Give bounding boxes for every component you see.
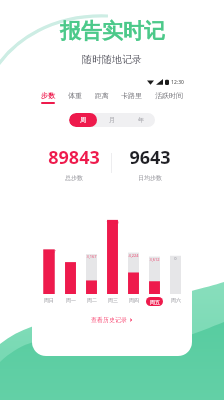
staticText: 周三 (108, 297, 118, 303)
staticText: 89843 (48, 145, 100, 170)
staticText: 随时随地记录 (82, 53, 142, 66)
staticText: 周日 (44, 297, 54, 303)
button[interactable]: 月 (97, 113, 126, 127)
staticText: 周一 (66, 297, 76, 303)
button[interactable]: 19,849 (102, 198, 123, 294)
staticText: 9,087 (65, 262, 76, 267)
button[interactable]: 9643 (112, 143, 187, 184)
staticText: 9643 (129, 145, 171, 170)
staticText: 报告实时记 (60, 18, 165, 44)
button[interactable]: 卡路里 (119, 90, 144, 103)
staticText: 距离 (95, 91, 109, 100)
staticText: 周六 (171, 297, 181, 303)
staticText: 12:30 (171, 79, 184, 86)
button[interactable]: 周 (69, 113, 97, 127)
staticText: 4,224 (128, 253, 139, 258)
staticText: 总步数 (65, 174, 83, 182)
button[interactable]: 年 (126, 113, 155, 127)
button[interactable]: 3,612 (144, 198, 165, 294)
button[interactable]: 0 (165, 198, 186, 294)
staticText: 0 (174, 256, 177, 261)
staticText: 日均步数 (138, 174, 162, 182)
staticText: 周四 (129, 297, 139, 303)
staticText: 3,167 (86, 254, 97, 259)
staticText: 3,612 (149, 257, 160, 262)
staticText: 周二 (87, 297, 97, 303)
staticText: 12,167 (43, 249, 56, 254)
staticText: 19,849 (106, 220, 119, 225)
staticText: 卡路里 (121, 91, 142, 100)
button[interactable]: 9,087 (60, 198, 81, 294)
staticText: 活跃时间 (155, 91, 183, 100)
staticText: 查看历史记录 (91, 316, 127, 324)
button[interactable]: 4,224 (123, 198, 144, 294)
button[interactable]: 周五 (146, 297, 163, 306)
button[interactable]: 12,167 (38, 198, 60, 294)
button[interactable]: 89843 (37, 143, 111, 184)
staticText: 年 (138, 116, 144, 124)
button[interactable]: 步数 (39, 90, 57, 105)
button[interactable]: 查看历史记录 (32, 316, 192, 324)
button[interactable]: 活跃时间 (153, 90, 185, 103)
button[interactable]: 距离 (93, 90, 111, 103)
staticText: 周 (80, 116, 86, 124)
staticText: 体重 (68, 91, 82, 100)
button[interactable]: 3,167 (81, 198, 102, 294)
staticText: 周五 (150, 299, 160, 305)
staticText: 步数 (41, 91, 55, 100)
button[interactable]: 体重 (66, 90, 84, 103)
staticText: 月 (109, 116, 115, 124)
